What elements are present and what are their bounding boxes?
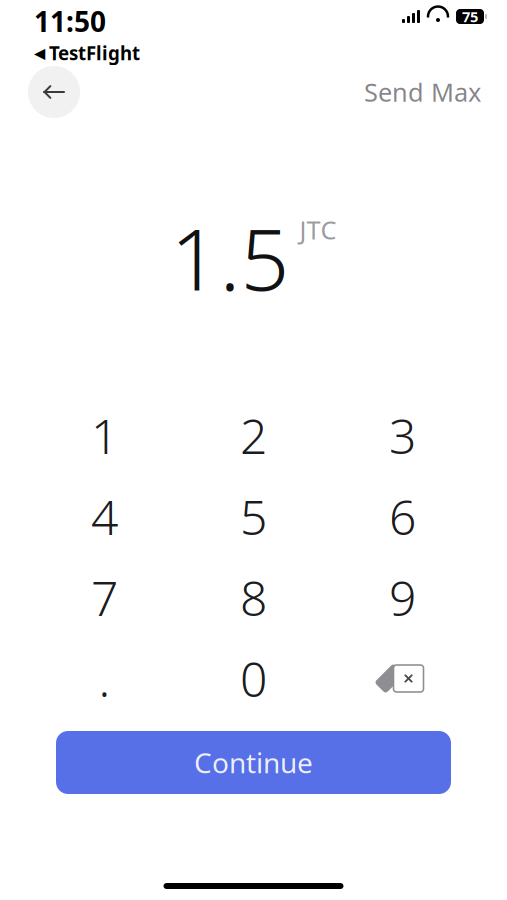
button[interactable]: 2 — [179, 395, 328, 476]
button[interactable]: . — [30, 638, 179, 719]
button[interactable]: Delete — [328, 638, 477, 719]
staticText: 1.5 — [170, 201, 289, 314]
staticText: 6 — [389, 485, 416, 548]
staticText: 75 — [462, 7, 478, 26]
button[interactable]: Send Max — [358, 69, 487, 115]
button[interactable]: Back — [28, 66, 80, 118]
staticText: 1 — [91, 404, 118, 467]
button[interactable]: 9 — [328, 557, 477, 638]
button[interactable]: 7 — [30, 557, 179, 638]
button[interactable]: 0 — [179, 638, 328, 719]
staticText: 3 — [389, 404, 416, 467]
button[interactable]: 5 — [179, 476, 328, 557]
staticText: 5 — [240, 485, 267, 548]
button[interactable]: 6 — [328, 476, 477, 557]
staticText: . — [98, 647, 110, 710]
button[interactable]: 1 — [30, 395, 179, 476]
staticText: 2 — [240, 404, 267, 467]
staticText: 9 — [389, 566, 416, 629]
staticText: 11:50 — [34, 2, 106, 40]
button[interactable]: Continue — [56, 731, 451, 794]
button[interactable]: 3 — [328, 395, 477, 476]
staticText: Continue — [194, 744, 313, 781]
staticText: 0 — [240, 647, 267, 710]
staticText: ◀ — [34, 45, 45, 61]
button[interactable]: 4 — [30, 476, 179, 557]
staticText: Send Max — [364, 75, 481, 109]
staticText: 4 — [91, 485, 118, 548]
staticText: 7 — [91, 566, 118, 629]
staticText: TestFlight — [49, 41, 140, 65]
staticText: 8 — [240, 566, 267, 629]
button[interactable]: 8 — [179, 557, 328, 638]
staticText: JTC — [299, 213, 336, 246]
